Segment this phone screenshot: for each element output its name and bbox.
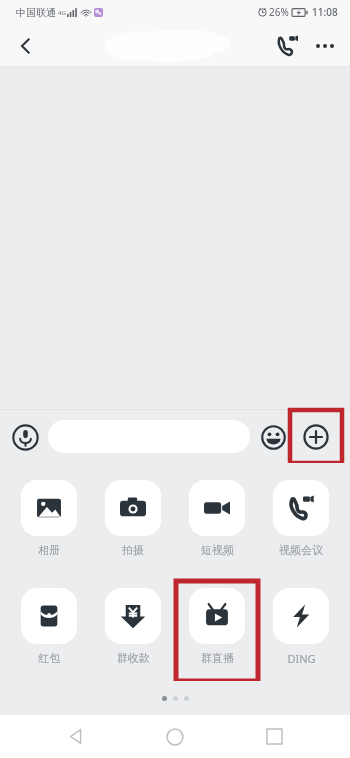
button[interactable]: Emoji xyxy=(256,420,290,454)
staticText: 短视频 xyxy=(201,543,234,557)
staticText: 中国联通 xyxy=(16,6,56,19)
staticText: 26% xyxy=(269,5,289,19)
staticText: 相册 xyxy=(38,543,60,557)
button[interactable]: Voice message xyxy=(8,420,42,454)
button[interactable]: 相册 xyxy=(8,473,90,573)
button[interactable]: 短视频 xyxy=(176,473,258,573)
staticText: 4G xyxy=(58,9,66,17)
staticText: 视频会议 xyxy=(279,543,323,557)
button[interactable]: Back xyxy=(6,26,46,66)
staticText: 11:08 xyxy=(312,5,338,19)
staticText: 红包 xyxy=(38,651,60,665)
button[interactable]: 红包 xyxy=(8,581,90,681)
staticText: 群直播 xyxy=(201,651,234,665)
staticText: 拍摄 xyxy=(122,543,144,557)
button[interactable]: Back xyxy=(53,715,99,758)
button[interactable]: Home xyxy=(152,715,198,758)
button[interactable]: 视频会议 xyxy=(260,473,342,573)
button[interactable]: 群收款 xyxy=(92,581,174,681)
staticText: DING xyxy=(287,651,316,666)
button[interactable]: More, add attachment xyxy=(290,410,342,463)
staticText: 群收款 xyxy=(117,651,150,665)
button[interactable]: 群直播 xyxy=(176,581,258,681)
button[interactable]: DING xyxy=(260,581,342,681)
button[interactable]: Video call xyxy=(268,27,306,65)
button[interactable]: Recent apps xyxy=(251,715,297,758)
button[interactable] xyxy=(48,420,250,453)
button[interactable]: More options xyxy=(306,27,344,65)
button[interactable]: 拍摄 xyxy=(92,473,174,573)
